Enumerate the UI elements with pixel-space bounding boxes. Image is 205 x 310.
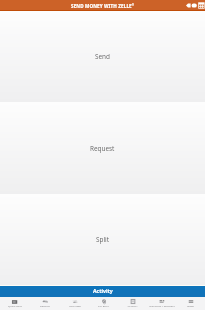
staticText: QUICK VIEW bbox=[8, 304, 22, 307]
button[interactable]: Split bbox=[0, 194, 205, 285]
staticText: SPENDING + BUDGETS bbox=[149, 304, 175, 307]
button[interactable]: ACTIVITY bbox=[118, 297, 147, 310]
staticText: Activity bbox=[93, 287, 113, 294]
staticText: DEPOSIT bbox=[40, 304, 50, 307]
button[interactable]: Request bbox=[0, 102, 205, 194]
button[interactable]: Send bbox=[0, 11, 205, 102]
staticText: Send bbox=[95, 52, 110, 61]
staticText: SEND MONEY WITH ZELLE® bbox=[71, 3, 135, 9]
staticText: ACTIVITY bbox=[127, 304, 138, 307]
staticText: PAY BILLS bbox=[98, 304, 109, 307]
staticText: MORE bbox=[187, 304, 194, 307]
button[interactable]: SPENDING + BUDGETS bbox=[147, 297, 176, 310]
staticText: Request bbox=[90, 144, 115, 153]
button[interactable]: PAY BILLS bbox=[89, 297, 118, 310]
button[interactable]: DEPOSIT bbox=[30, 297, 60, 310]
staticText: Split bbox=[96, 235, 110, 244]
button[interactable]: MORE bbox=[176, 297, 205, 310]
button[interactable]: Activity bbox=[0, 286, 205, 297]
button[interactable]: TRANSFER bbox=[60, 297, 89, 310]
button[interactable]: QUICK VIEW bbox=[0, 297, 30, 310]
staticText: TRANSFER bbox=[69, 304, 81, 307]
